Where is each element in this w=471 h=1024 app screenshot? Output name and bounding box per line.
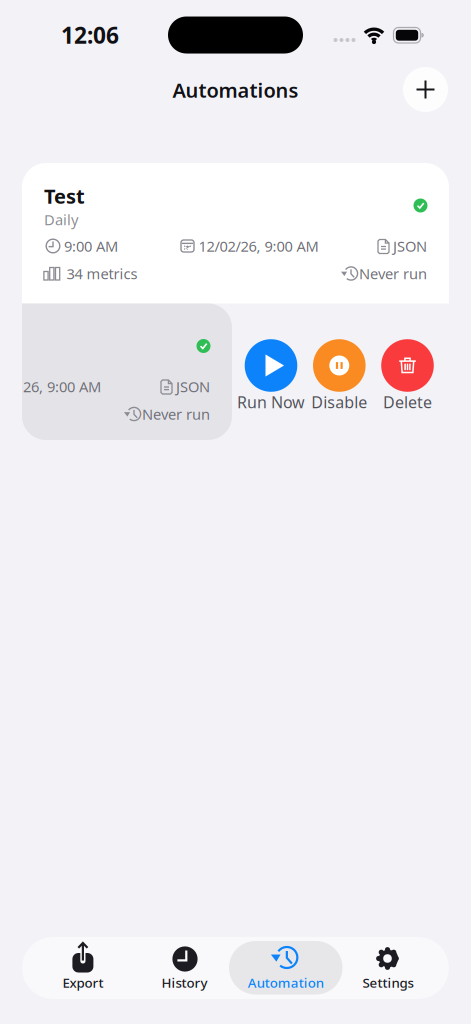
staticText: Delete — [383, 391, 432, 413]
staticText: 34 metrics — [66, 264, 137, 283]
button[interactable]: Test automation — [22, 163, 449, 303]
staticText: History — [162, 974, 208, 991]
button[interactable]: History — [135, 937, 235, 995]
staticText: Settings — [363, 974, 414, 991]
button[interactable]: Automation — [229, 937, 342, 995]
staticText: Test — [44, 183, 85, 209]
staticText: JSON — [393, 236, 427, 256]
button[interactable]: Settings — [338, 937, 438, 995]
button[interactable]: Export — [33, 937, 133, 995]
staticText: 9:00 AM — [64, 236, 118, 256]
staticText: JSON — [176, 377, 210, 396]
staticText: 12:06 — [61, 20, 119, 50]
staticText: Run Now — [237, 391, 305, 413]
staticText: 26, 9:00 AM — [23, 377, 101, 396]
button[interactable]: Test automation, swiped — [22, 303, 232, 440]
button[interactable]: Delete — [370, 337, 444, 411]
staticText: Automation — [248, 974, 324, 991]
button[interactable]: Run Now — [234, 337, 308, 411]
staticText: Automations — [172, 77, 298, 103]
staticText: 12/02/26, 9:00 AM — [198, 236, 318, 256]
staticText: Export — [62, 974, 103, 991]
button[interactable]: Disable — [302, 337, 376, 411]
button[interactable]: Add automation — [403, 67, 448, 112]
staticText: Never run — [359, 264, 427, 283]
staticText: Never run — [142, 404, 210, 424]
staticText: Disable — [311, 391, 367, 413]
staticText: Daily — [44, 210, 78, 229]
